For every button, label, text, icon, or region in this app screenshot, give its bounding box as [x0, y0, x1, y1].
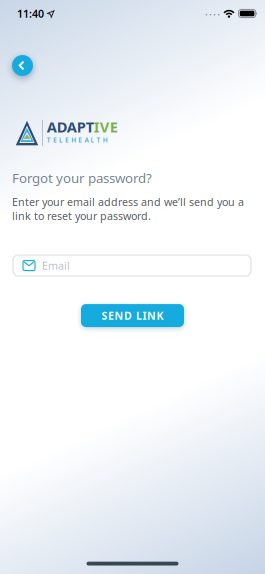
staticText: H	[71, 136, 76, 144]
staticText: E	[53, 136, 57, 144]
staticText: 11:40	[17, 6, 44, 21]
button[interactable]: Email	[13, 255, 251, 276]
staticText: SEND LINK	[101, 308, 163, 323]
staticText: Email	[42, 258, 70, 273]
staticText: L	[90, 136, 94, 144]
staticText: H	[103, 136, 108, 144]
staticText: L	[59, 136, 63, 144]
button[interactable]: Back	[12, 55, 33, 76]
staticText: T	[97, 136, 101, 144]
staticText: T	[47, 136, 51, 144]
button[interactable]: SEND LINK	[81, 304, 184, 327]
staticText: IVE	[94, 117, 118, 137]
staticText: Enter your email address and we’ll send …	[12, 195, 244, 223]
staticText: ADAPT	[47, 117, 94, 137]
staticText: E	[65, 136, 69, 144]
staticText: Forgot your password?	[12, 169, 152, 187]
staticText: A	[84, 136, 88, 144]
staticText: E	[78, 136, 82, 144]
